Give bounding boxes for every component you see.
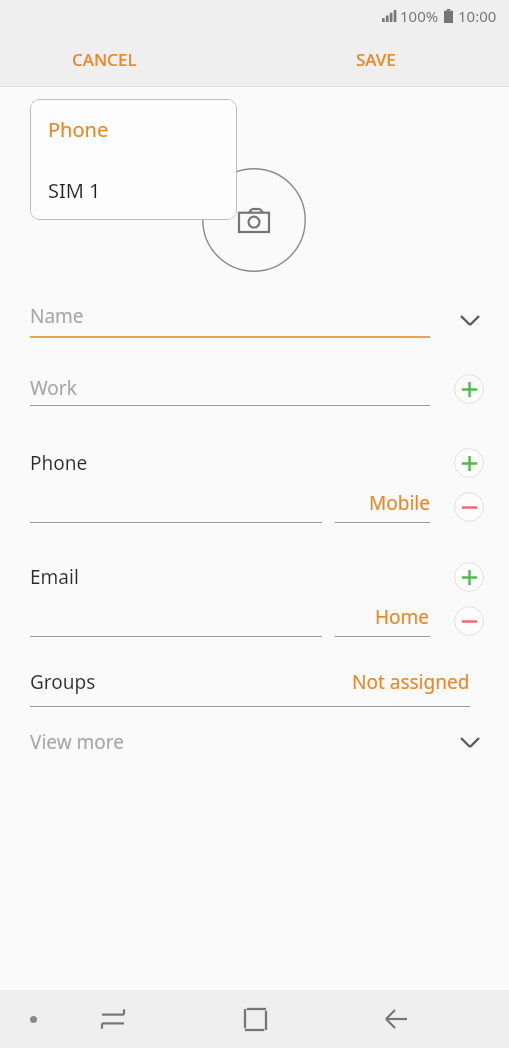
staticText: Mobile bbox=[369, 490, 430, 516]
staticText: Home bbox=[375, 604, 430, 630]
staticText: Work bbox=[30, 375, 77, 401]
staticText: Not assigned bbox=[352, 669, 470, 695]
button[interactable]: Phone bbox=[30, 450, 88, 476]
staticText: Groups bbox=[30, 669, 96, 695]
button[interactable]: Add email bbox=[454, 562, 484, 592]
button[interactable]: SAVE bbox=[344, 40, 408, 79]
staticText: Phone bbox=[30, 450, 88, 476]
button[interactable]: Back bbox=[371, 994, 421, 1044]
staticText: 100% bbox=[400, 6, 439, 26]
button[interactable]: Remove email bbox=[454, 606, 484, 636]
button[interactable]: SIM 1 bbox=[30, 160, 237, 220]
button[interactable]: Add organization bbox=[454, 374, 484, 404]
button[interactable]: View more bbox=[0, 722, 509, 762]
staticText: SIM 1 bbox=[48, 177, 101, 204]
staticText: Email bbox=[30, 564, 79, 590]
staticText: View more bbox=[30, 729, 124, 755]
button[interactable]: Phone bbox=[30, 99, 237, 159]
staticText: SAVE bbox=[356, 48, 396, 71]
staticText: CANCEL bbox=[72, 48, 137, 71]
staticText: Name bbox=[30, 303, 84, 329]
button[interactable]: Home bbox=[229, 993, 281, 1045]
button[interactable]: Name bbox=[30, 303, 84, 329]
button[interactable]: CANCEL bbox=[60, 40, 149, 79]
button[interactable]: Recent apps bbox=[88, 994, 138, 1044]
button[interactable]: Menu indicator bbox=[13, 999, 53, 1039]
button[interactable]: Mobile bbox=[335, 490, 430, 516]
button[interactable]: Add phone bbox=[454, 448, 484, 478]
button[interactable]: Email bbox=[30, 564, 79, 590]
button[interactable]: Remove phone bbox=[454, 492, 484, 522]
staticText: 10:00 bbox=[458, 6, 497, 26]
button[interactable]: Expand name bbox=[450, 300, 490, 340]
button[interactable]: Work bbox=[30, 375, 77, 401]
button[interactable]: Home bbox=[335, 604, 430, 630]
staticText: Phone bbox=[48, 116, 109, 143]
button[interactable]: Groups bbox=[0, 666, 509, 698]
